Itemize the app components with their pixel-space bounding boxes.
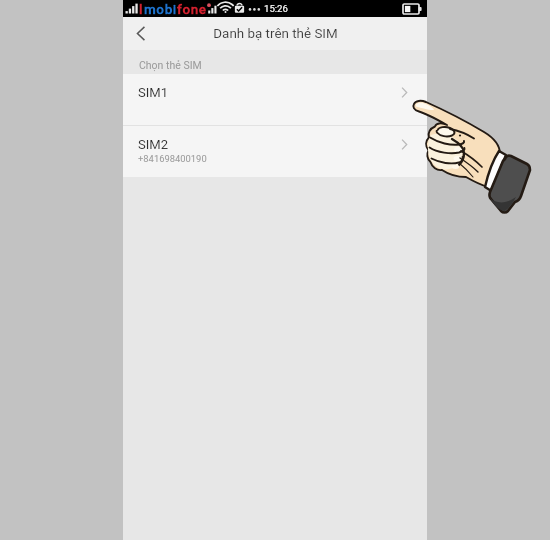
staticText: +841698400190 <box>138 153 207 164</box>
staticText: SIM2 <box>138 137 169 152</box>
button[interactable]: Back <box>123 17 157 50</box>
staticText: SIM1 <box>138 85 169 100</box>
staticText: l <box>139 1 144 17</box>
staticText: Danh bạ trên thẻ SIM <box>213 26 338 42</box>
staticText: mobi <box>144 1 177 17</box>
staticText: 15:26 <box>264 3 288 14</box>
staticText: Chọn thẻ SIM <box>139 59 202 71</box>
staticText: fone <box>177 1 207 17</box>
button[interactable]: SIM1 <box>123 74 427 125</box>
button[interactable]: SIM2 <box>123 126 427 177</box>
